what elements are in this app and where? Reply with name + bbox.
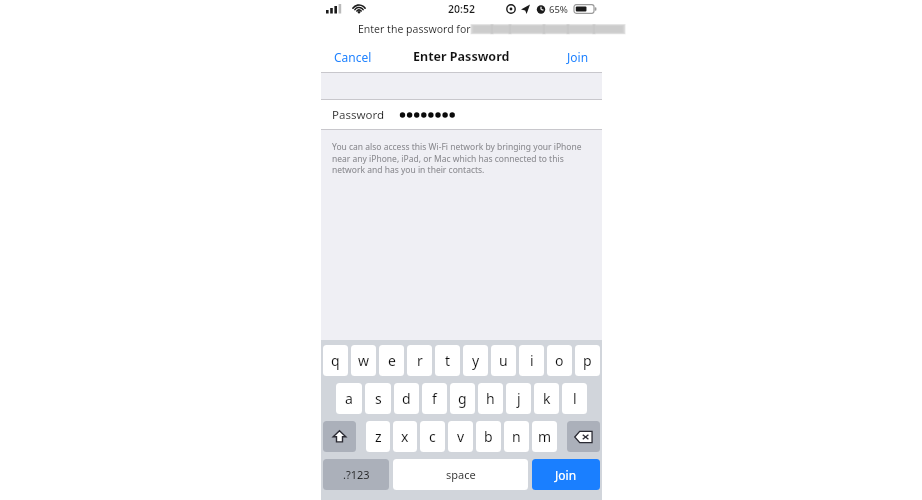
staticText: y	[472, 351, 480, 370]
button[interactable]: f	[422, 383, 447, 414]
button[interactable]: Backspace	[567, 421, 600, 452]
button[interactable]: j	[506, 383, 531, 414]
button[interactable]: z	[366, 421, 390, 452]
button[interactable]: b	[476, 421, 501, 452]
staticText: w	[358, 351, 370, 370]
button[interactable]: s	[365, 383, 391, 414]
staticText: 20:52	[448, 2, 475, 16]
staticText: f	[432, 389, 437, 408]
button[interactable]: o	[547, 345, 572, 376]
staticText: h	[486, 389, 495, 408]
staticText: t	[445, 351, 451, 370]
button[interactable]: g	[450, 383, 475, 414]
staticText: k	[543, 389, 551, 408]
button[interactable]: d	[394, 383, 419, 414]
staticText: a	[345, 389, 353, 408]
staticText: Enter the password for	[358, 22, 474, 36]
button[interactable]: x	[393, 421, 417, 452]
button[interactable]: n	[504, 421, 529, 452]
staticText: x	[401, 427, 409, 446]
button[interactable]: r	[407, 345, 432, 376]
button[interactable]: Password	[321, 100, 602, 129]
staticText: q	[331, 351, 340, 370]
staticText: Cancel	[334, 49, 372, 65]
staticText: j	[517, 389, 521, 408]
button[interactable]: k	[534, 383, 559, 414]
staticText: r	[417, 351, 423, 370]
staticText: l	[573, 389, 577, 408]
staticText: o	[555, 351, 564, 370]
staticText: Password	[332, 107, 385, 123]
staticText: c	[429, 427, 436, 446]
staticText: m	[538, 427, 552, 446]
staticText: v	[457, 427, 465, 446]
staticText: space	[446, 467, 476, 482]
staticText: e	[388, 351, 396, 370]
button[interactable]: Join	[554, 43, 602, 71]
staticText: n	[512, 427, 521, 446]
staticText: You can also access this Wi-Fi network b…	[332, 141, 586, 176]
button[interactable]: y	[463, 345, 488, 376]
staticText: .?123	[343, 467, 370, 482]
button[interactable]: space	[393, 459, 528, 490]
button[interactable]: c	[420, 421, 445, 452]
staticText: d	[402, 389, 411, 408]
staticText: g	[458, 389, 467, 408]
button[interactable]: h	[478, 383, 503, 414]
button[interactable]: i	[519, 345, 544, 376]
button[interactable]: e	[379, 345, 404, 376]
button[interactable]: m	[532, 421, 557, 452]
button[interactable]: Join	[532, 459, 600, 490]
button[interactable]: l	[562, 383, 587, 414]
staticText: u	[499, 351, 508, 370]
staticText: p	[583, 351, 592, 370]
staticText: s	[375, 389, 382, 408]
button[interactable]: .?123	[323, 459, 389, 490]
staticText: z	[375, 427, 382, 446]
staticText: Enter Password	[413, 48, 510, 65]
button[interactable]: Cancel	[321, 43, 385, 71]
button[interactable]: a	[336, 383, 362, 414]
button[interactable]: u	[491, 345, 516, 376]
staticText: 65%	[549, 3, 568, 16]
button[interactable]: v	[448, 421, 473, 452]
button[interactable]: q	[323, 345, 348, 376]
staticText: Join	[567, 49, 589, 65]
staticText: Join	[555, 467, 577, 483]
button[interactable]: t	[435, 345, 460, 376]
staticText: i	[530, 351, 534, 370]
button[interactable]: p	[575, 345, 600, 376]
button[interactable]: Shift	[323, 421, 356, 452]
button[interactable]: w	[351, 345, 376, 376]
staticText: b	[484, 427, 493, 446]
